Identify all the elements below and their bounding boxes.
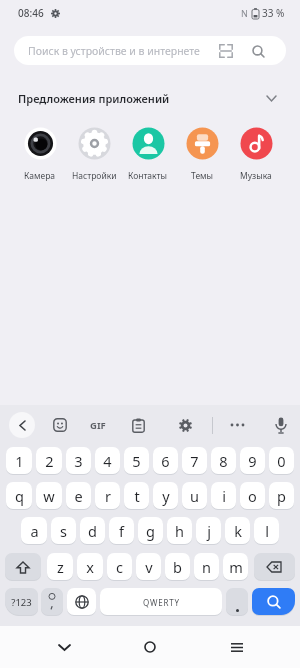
staticText: Настройки [72, 170, 117, 182]
staticText: z [57, 557, 64, 577]
button[interactable]: s [51, 517, 76, 545]
staticText: i [222, 486, 226, 506]
staticText: 5 [132, 451, 141, 471]
button[interactable]: d [80, 517, 105, 545]
staticText: e [74, 486, 83, 506]
staticText: j [207, 521, 211, 541]
button[interactable]: t [124, 482, 149, 510]
button[interactable]: Контакты [121, 127, 175, 182]
button[interactable]: c [107, 553, 132, 581]
button[interactable]: ?123 [5, 588, 38, 616]
staticText: 2 [45, 451, 54, 471]
staticText: Темы [191, 170, 214, 182]
button[interactable] [48, 626, 80, 668]
button[interactable] [9, 412, 35, 438]
staticText: N [241, 7, 248, 19]
button[interactable]: 2 [36, 447, 62, 475]
button[interactable]: 4 [95, 447, 120, 475]
button[interactable]: e [66, 482, 91, 510]
button[interactable]: GIF [90, 419, 106, 432]
button[interactable]: u [182, 482, 207, 510]
button[interactable]: Темы [175, 127, 229, 182]
staticText: Поиск в устройстве и в интернете [28, 44, 200, 58]
button[interactable]: Настройки [67, 127, 121, 182]
button[interactable]: x [77, 553, 103, 581]
staticText: q [15, 486, 24, 506]
staticText: m [229, 557, 243, 577]
button[interactable]: Камера [13, 127, 67, 182]
staticText: r [105, 486, 111, 506]
button[interactable]: h [167, 517, 192, 545]
staticText: ?123 [11, 596, 32, 609]
staticText: d [88, 521, 97, 541]
button[interactable] [67, 588, 96, 616]
staticText: 1 [15, 451, 24, 471]
button[interactable]: i [211, 482, 236, 510]
button[interactable] [275, 417, 287, 434]
button[interactable] [53, 418, 67, 432]
staticText: 9 [248, 451, 257, 471]
staticText: v [145, 557, 153, 577]
button[interactable]: 5 [124, 447, 149, 475]
button[interactable]: y [153, 482, 178, 510]
button[interactable] [134, 626, 166, 668]
button[interactable]: b [165, 553, 190, 581]
staticText: Камера [24, 170, 56, 182]
staticText: x [86, 557, 94, 577]
staticText: n [202, 557, 211, 577]
button[interactable]: w [36, 482, 62, 510]
button[interactable]: f [109, 517, 134, 545]
button[interactable]: p [269, 482, 294, 510]
staticText: f [119, 521, 124, 541]
button[interactable]: 0 [269, 447, 294, 475]
staticText: Предложения приложений [18, 91, 170, 106]
button[interactable]: j [196, 517, 221, 545]
button[interactable] [226, 588, 248, 616]
button[interactable]: m [223, 553, 248, 581]
button[interactable]: l [254, 517, 279, 545]
button[interactable]: g [138, 517, 163, 545]
button[interactable] [230, 423, 245, 427]
button[interactable] [41, 588, 63, 616]
button[interactable] [221, 626, 253, 668]
button[interactable]: o [240, 482, 265, 510]
staticText: 6 [161, 451, 170, 471]
staticText: 08:46 [18, 6, 44, 20]
button[interactable]: 3 [66, 447, 91, 475]
staticText: b [173, 557, 182, 577]
button[interactable]: k [225, 517, 250, 545]
button[interactable]: r [95, 482, 120, 510]
button[interactable]: z [47, 553, 73, 581]
button[interactable]: 7 [182, 447, 207, 475]
button[interactable] [132, 418, 145, 433]
staticText: k [234, 521, 242, 541]
staticText: Музыка [240, 170, 272, 182]
button[interactable] [252, 588, 295, 616]
button[interactable] [254, 553, 295, 581]
button[interactable]: QWERTY [100, 588, 222, 616]
button[interactable]: 9 [240, 447, 265, 475]
button[interactable]: 6 [153, 447, 178, 475]
staticText: s [60, 521, 67, 541]
staticText: t [134, 486, 140, 506]
staticText: l [265, 521, 269, 541]
button[interactable]: a [21, 517, 47, 545]
button[interactable]: n [194, 553, 219, 581]
staticText: a [30, 521, 39, 541]
staticText: GIF [90, 419, 106, 432]
button[interactable]: v [136, 553, 161, 581]
staticText: 0 [277, 451, 286, 471]
staticText: 8 [219, 451, 228, 471]
button[interactable] [179, 419, 192, 432]
staticText: u [190, 486, 199, 506]
button[interactable]: q [6, 482, 32, 510]
button[interactable]: 1 [6, 447, 32, 475]
staticText: y [162, 486, 170, 506]
staticText: 3 [74, 451, 83, 471]
button[interactable]: Поиск в устройстве и в интернете [14, 36, 286, 65]
button[interactable] [5, 553, 41, 581]
button[interactable]: 8 [211, 447, 236, 475]
button[interactable]: Музыка [229, 127, 283, 182]
staticText: 7 [190, 451, 199, 471]
staticText: c [116, 557, 123, 577]
